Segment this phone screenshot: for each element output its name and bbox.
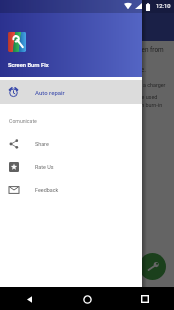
staticText: overnight so this app can be used — [77, 94, 158, 100]
staticText: Protect your phone screen from — [74, 46, 164, 54]
staticText: Comunicate — [9, 118, 37, 124]
button[interactable]: Repair — [139, 253, 166, 280]
staticText: 12:10 — [156, 3, 171, 10]
staticText: Rate Us — [35, 164, 54, 170]
staticText: Feedback — [35, 187, 59, 193]
staticText: Leave the phone plugged in to a charger — [70, 82, 166, 88]
button[interactable]: Feedback — [0, 178, 142, 201]
staticText: to repair the screen burn-in — [98, 102, 163, 108]
button[interactable]: Back — [19, 289, 39, 309]
button[interactable]: Share — [0, 132, 142, 155]
staticText: Auto repair — [35, 89, 65, 96]
staticText: Share — [35, 141, 49, 147]
staticText: Screen Burn Fix — [8, 62, 49, 69]
button[interactable]: Rate Us — [0, 155, 142, 178]
staticText: damage. — [121, 66, 146, 74]
button[interactable]: Home — [77, 289, 97, 309]
button[interactable]: Auto repair — [0, 80, 142, 104]
button[interactable]: Recents — [135, 289, 155, 309]
